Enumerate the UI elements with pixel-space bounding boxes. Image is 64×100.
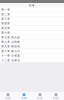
button[interactable]: 发现 xyxy=(32,92,48,100)
button[interactable]: 第七章 风云起 xyxy=(0,35,64,40)
staticText: 第八章 山雨来 xyxy=(1,40,20,43)
staticText: 第三章 xyxy=(1,17,10,20)
staticText: 书城 xyxy=(21,97,27,100)
button[interactable]: 书城 xyxy=(16,92,32,100)
staticText: 十二章 水落石 xyxy=(1,59,20,62)
staticText: 第七章 风云起 xyxy=(1,36,20,39)
button[interactable]: 第九章 暗流动 xyxy=(0,44,64,49)
staticText: 第六章 xyxy=(1,31,10,34)
button[interactable]: 第十章 拨云日 xyxy=(0,49,64,53)
staticText: 十一章 尘埃落 xyxy=(1,54,20,57)
button[interactable]: 第三章 xyxy=(0,17,64,21)
staticText: 第四章 xyxy=(1,22,10,25)
button[interactable]: 第五章 xyxy=(0,26,64,30)
button[interactable]: 第二章 xyxy=(0,12,64,17)
staticText: 第十章 拨云日 xyxy=(1,49,20,53)
button[interactable]: 第六章 xyxy=(0,30,64,35)
staticText: 第九章 暗流动 xyxy=(1,45,20,48)
staticText: 我的 xyxy=(53,97,59,100)
button[interactable]: 书架 xyxy=(0,92,16,100)
button[interactable]: 十二章 水落石 xyxy=(0,58,64,63)
button[interactable]: 第一章 xyxy=(0,7,64,12)
staticText: 第一章 xyxy=(1,8,10,11)
staticText: 第五章 xyxy=(1,26,10,30)
staticText: 书架 xyxy=(5,97,11,100)
button[interactable]: 第四章 xyxy=(0,21,64,26)
staticText: 发现 xyxy=(37,97,43,100)
button[interactable]: 十一章 尘埃落 xyxy=(0,53,64,58)
staticText: 第二章 xyxy=(1,13,10,16)
staticText: 目录 xyxy=(29,4,35,7)
button[interactable]: 第八章 山雨来 xyxy=(0,40,64,44)
button[interactable]: 我的 xyxy=(48,92,64,100)
